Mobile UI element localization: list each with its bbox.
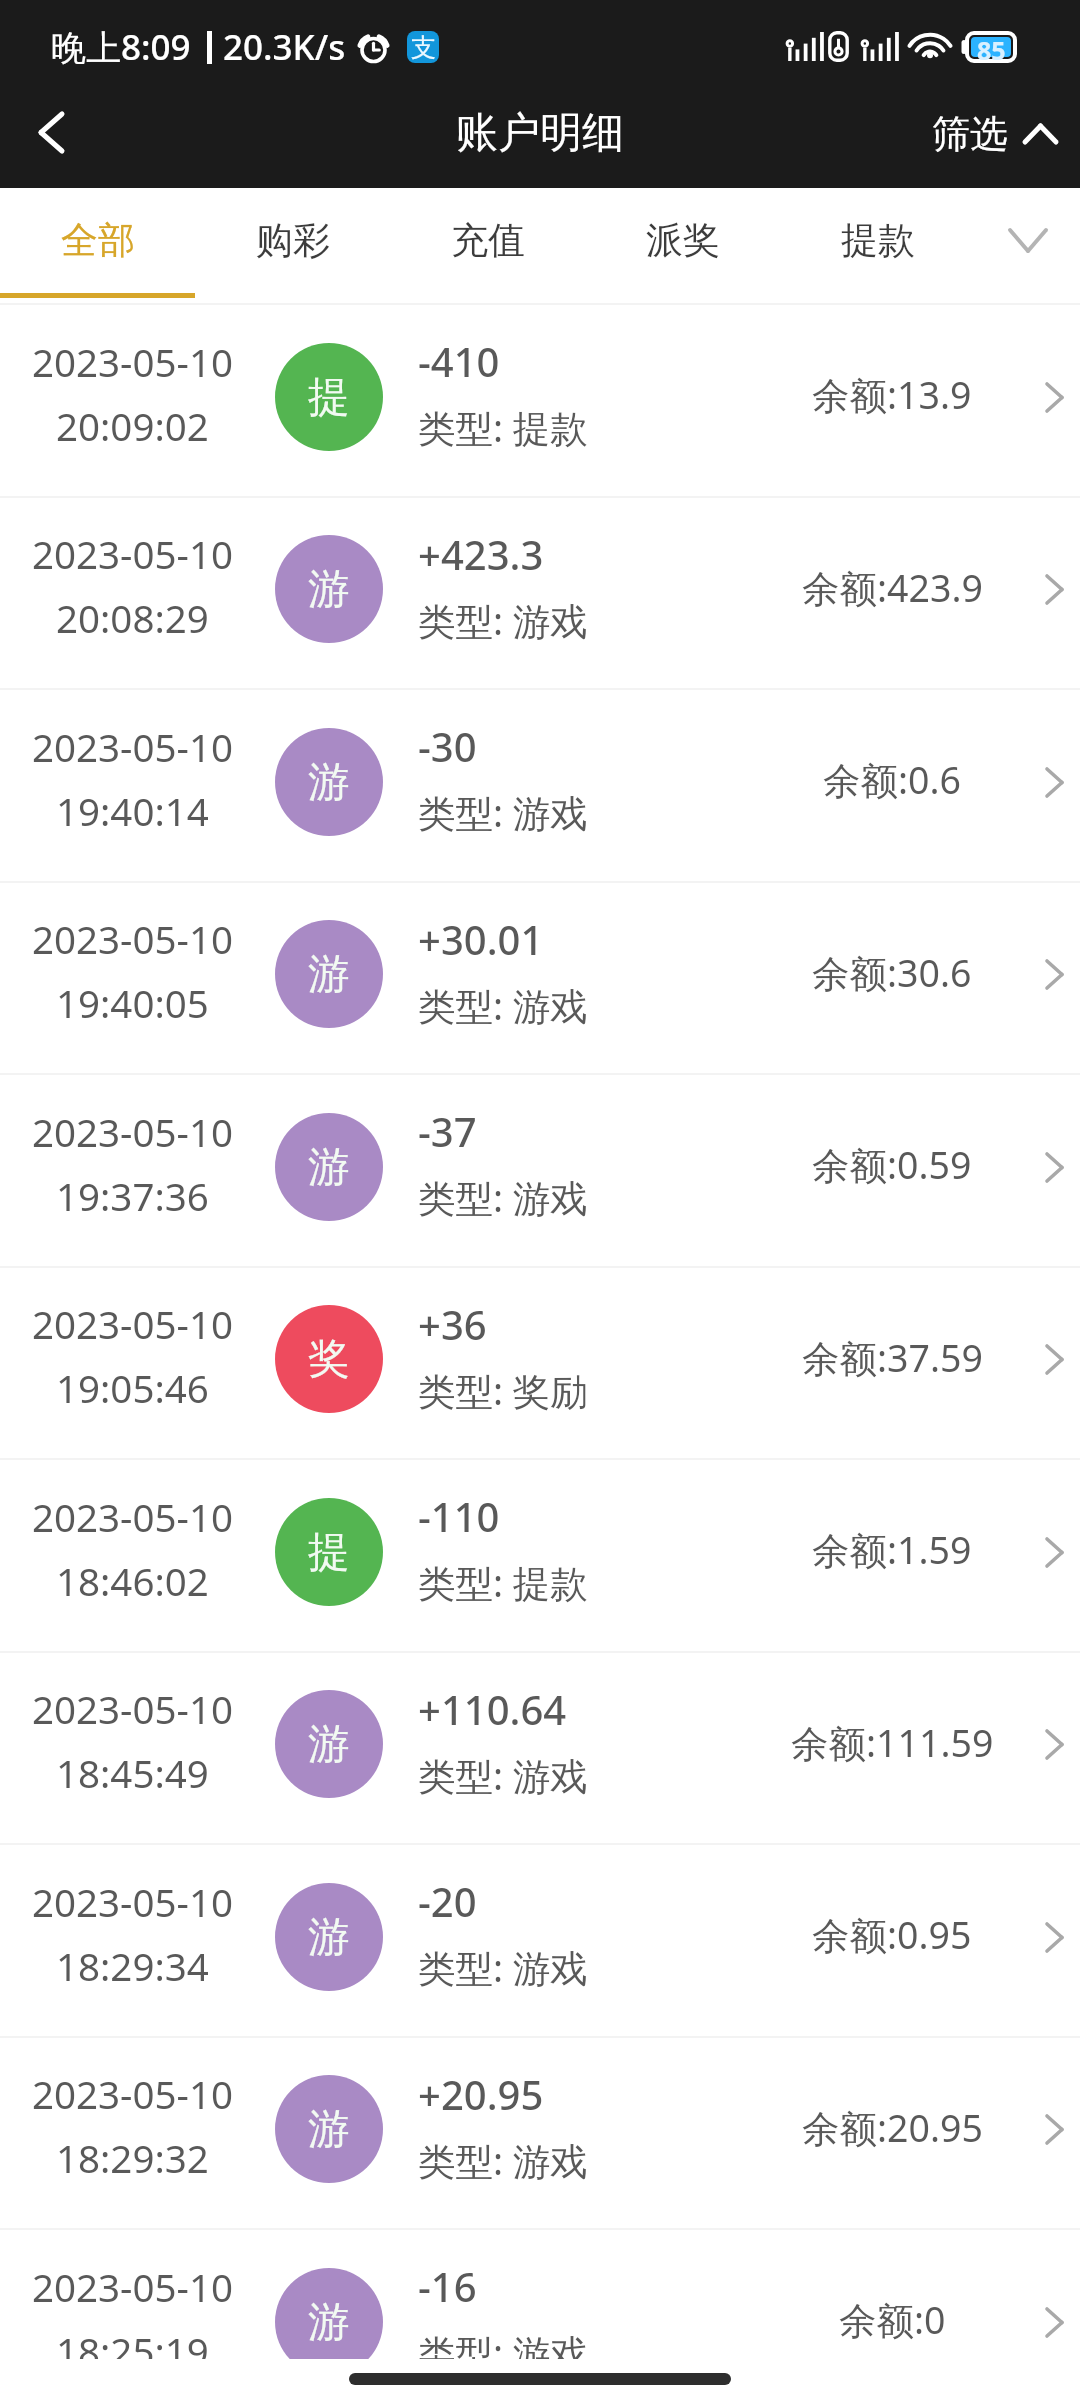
staticText: +36 xyxy=(418,1297,487,1351)
staticText: 2023-05-10 xyxy=(32,1491,233,1543)
staticText: +20.95 xyxy=(418,2067,544,2121)
button[interactable]: 2023-05-10 xyxy=(0,1268,1080,1460)
staticText: 游 xyxy=(308,756,350,808)
button[interactable]: 2023-05-10 xyxy=(0,1075,1080,1268)
staticText: 18:29:34 xyxy=(56,1940,209,1992)
staticText: 余额:0.6 xyxy=(823,754,961,805)
staticText: -30 xyxy=(418,719,477,773)
staticText: 类型: 提款 xyxy=(418,1557,588,1608)
staticText: 18:25:19 xyxy=(56,2325,209,2359)
staticText: 充值 xyxy=(451,217,525,264)
staticText: 类型: 游戏 xyxy=(418,787,588,838)
button[interactable]: 2023-05-10 xyxy=(0,2038,1080,2230)
staticText: 18:46:02 xyxy=(56,1555,209,1607)
staticText: 余额:111.59 xyxy=(791,1717,994,1768)
staticText: 提款 xyxy=(841,217,915,264)
staticText: 19:05:46 xyxy=(56,1362,209,1414)
button[interactable]: Back xyxy=(0,86,102,179)
staticText: -16 xyxy=(418,2259,477,2313)
staticText: 2023-05-10 xyxy=(32,1106,233,1158)
staticText: 账户明细 xyxy=(456,107,624,160)
staticText: 2023-05-10 xyxy=(32,1683,233,1735)
staticText: 20:08:29 xyxy=(56,592,209,644)
staticText: 2023-05-10 xyxy=(32,721,233,773)
staticText: 类型: 游戏 xyxy=(418,1750,588,1801)
staticText: 余额:423.9 xyxy=(802,562,983,613)
staticText: 余额:0 xyxy=(839,2294,946,2345)
staticText: 全部 xyxy=(61,217,135,264)
staticText: 余额:0.59 xyxy=(812,1139,972,1190)
staticText: 类型: 奖励 xyxy=(418,1365,588,1416)
button[interactable]: 筛选 xyxy=(914,98,1080,170)
staticText: 类型: 提款 xyxy=(418,402,588,453)
staticText: 类型: 游戏 xyxy=(418,2135,588,2186)
button[interactable]: 2023-05-10 xyxy=(0,2230,1080,2359)
staticText: 19:40:05 xyxy=(56,977,209,1029)
staticText: 游 xyxy=(308,1718,350,1770)
staticText: 游 xyxy=(308,1911,350,1963)
staticText: 余额:1.59 xyxy=(812,1524,972,1575)
staticText: +423.3 xyxy=(418,527,544,581)
staticText: -410 xyxy=(418,334,500,388)
button[interactable]: 2023-05-10 xyxy=(0,498,1080,690)
button[interactable]: 2023-05-10 xyxy=(0,1845,1080,2038)
staticText: 18:29:32 xyxy=(56,2132,209,2184)
button[interactable]: 2023-05-10 xyxy=(0,690,1080,883)
staticText: 余额:30.6 xyxy=(812,947,972,998)
button[interactable]: 2023-05-10 xyxy=(0,1653,1080,1845)
button[interactable]: 购彩 xyxy=(195,188,390,305)
staticText: 2023-05-10 xyxy=(32,913,233,965)
staticText: 余额:0.95 xyxy=(812,1909,972,1960)
staticText: 晚上8:09 xyxy=(51,23,191,71)
button[interactable]: 2023-05-10 xyxy=(0,883,1080,1075)
staticText: 2023-05-10 xyxy=(32,2261,233,2313)
staticText: 2023-05-10 xyxy=(32,1298,233,1350)
button[interactable]: 派奖 xyxy=(585,188,780,305)
button[interactable]: Expand tabs xyxy=(975,188,1080,305)
button[interactable]: 充值 xyxy=(390,188,585,305)
staticText: 奖 xyxy=(308,1333,350,1385)
staticText: 游 xyxy=(308,1141,350,1193)
staticText: 2023-05-10 xyxy=(32,528,233,580)
staticText: 2023-05-10 xyxy=(32,1876,233,1928)
staticText: 2023-05-10 xyxy=(32,2068,233,2120)
staticText: 余额:37.59 xyxy=(802,1332,983,1383)
staticText: 85 xyxy=(977,33,1006,61)
staticText: 游 xyxy=(308,948,350,1000)
button[interactable]: 提款 xyxy=(780,188,975,305)
staticText: 类型: 游戏 xyxy=(418,980,588,1031)
staticText: 类型: 游戏 xyxy=(418,1942,588,1993)
staticText: 余额:20.95 xyxy=(802,2102,983,2153)
staticText: 19:40:14 xyxy=(56,785,209,837)
staticText: 购彩 xyxy=(256,217,330,264)
button[interactable]: 2023-05-10 xyxy=(0,305,1080,498)
staticText: 类型: 游戏 xyxy=(418,1172,588,1223)
staticText: 游 xyxy=(308,563,350,615)
staticText: 派奖 xyxy=(646,217,720,264)
staticText: 类型: 游戏 xyxy=(418,595,588,646)
staticText: 游 xyxy=(308,2103,350,2155)
staticText: 提 xyxy=(308,1526,350,1578)
staticText: 提 xyxy=(308,371,350,423)
staticText: 2023-05-10 xyxy=(32,336,233,388)
staticText: -20 xyxy=(418,1874,477,1928)
staticText: 19:37:36 xyxy=(56,1170,209,1222)
staticText: 18:45:49 xyxy=(56,1747,209,1799)
staticText: -110 xyxy=(418,1489,500,1543)
staticText: 20.3K/s xyxy=(223,23,346,71)
button[interactable]: 全部 xyxy=(0,188,195,305)
staticText: 游 xyxy=(308,2296,350,2348)
staticText: 20:09:02 xyxy=(56,400,209,452)
button[interactable]: 2023-05-10 xyxy=(0,1460,1080,1653)
staticText: 类型: 游戏 xyxy=(418,2327,588,2359)
staticText: -37 xyxy=(418,1104,477,1158)
staticText: 余额:13.9 xyxy=(812,369,972,420)
staticText: 支 xyxy=(411,32,436,63)
staticText: 筛选 xyxy=(932,110,1008,158)
staticText: +110.64 xyxy=(418,1682,567,1736)
staticText: +30.01 xyxy=(418,912,544,966)
